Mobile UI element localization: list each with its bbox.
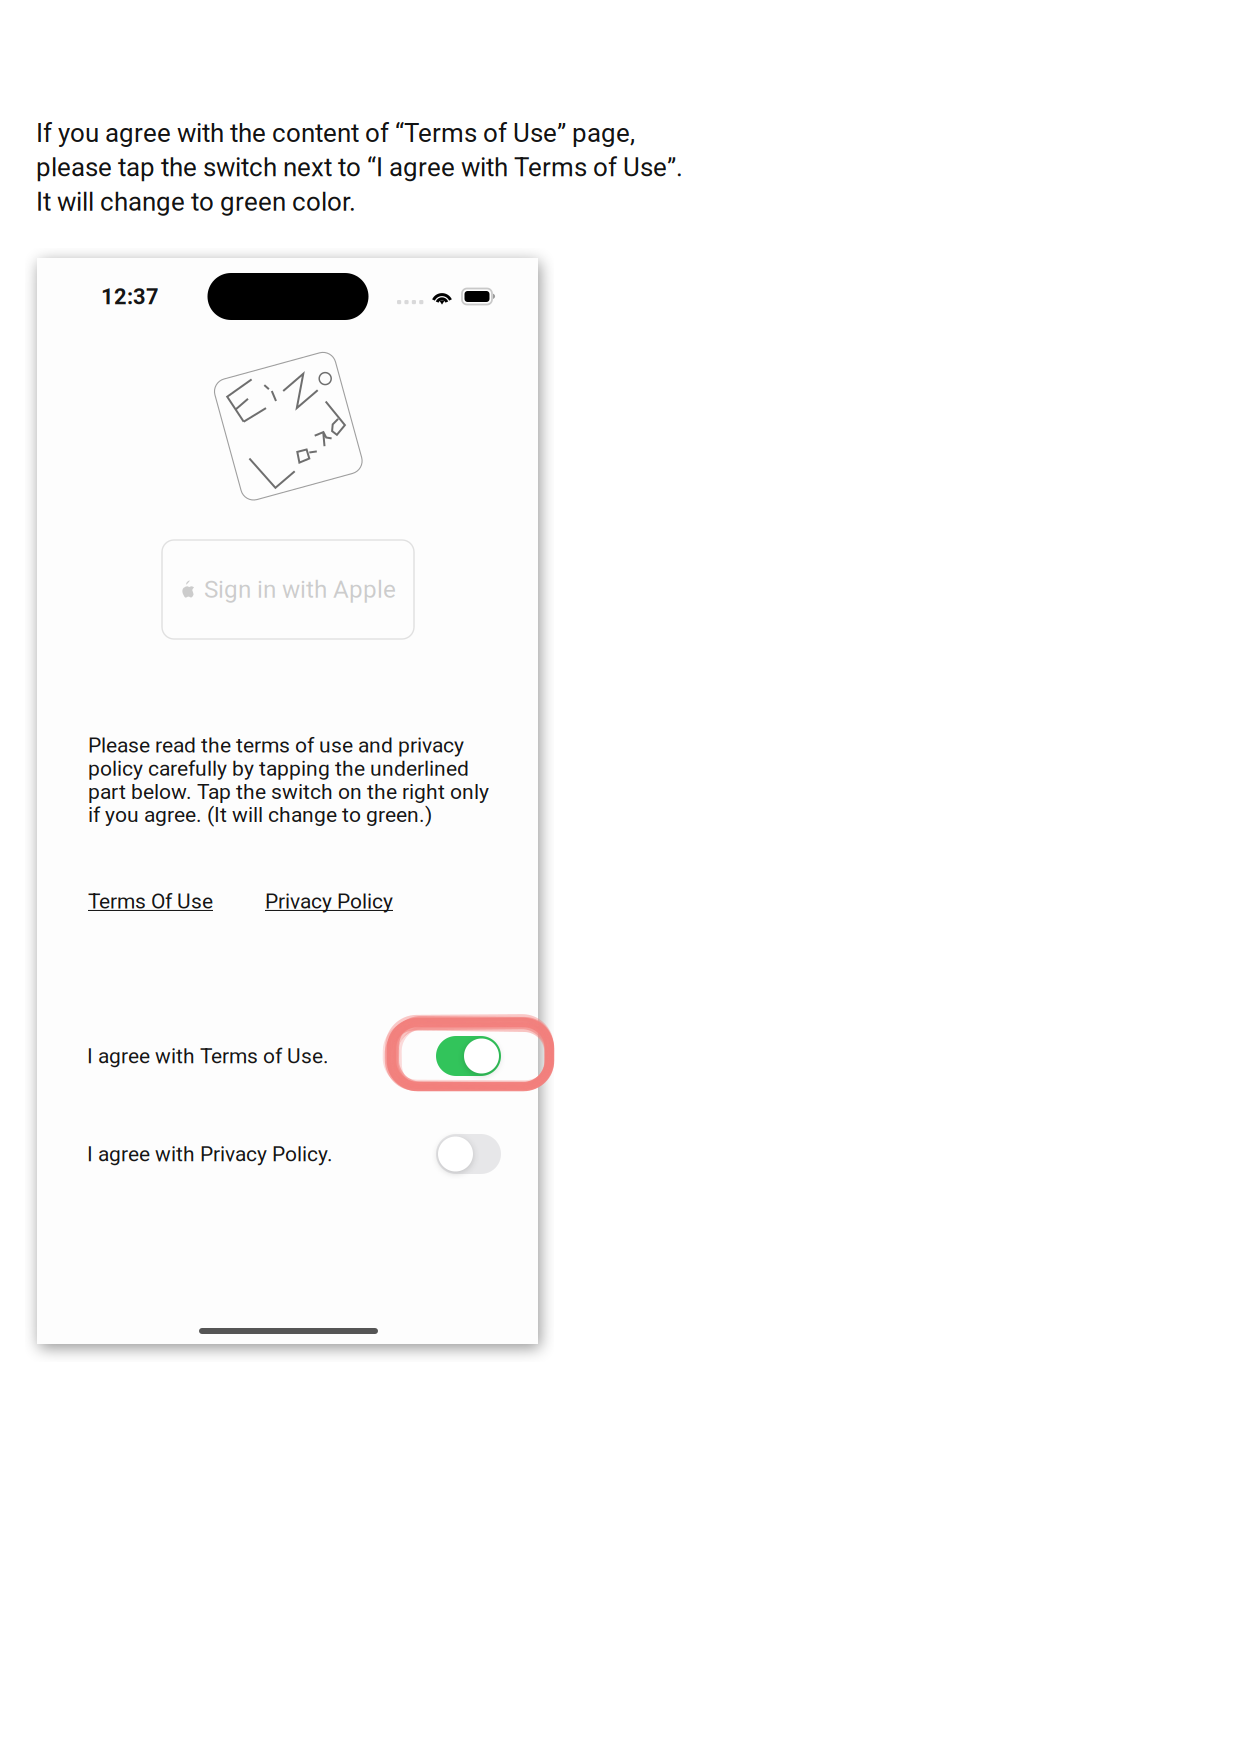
staticText: If you agree with the content of “Terms … (36, 118, 635, 148)
staticText: 12:37 (101, 284, 159, 310)
staticText: please tap the switch next to “I agree w… (36, 152, 683, 183)
staticText: part below. Tap the switch on the right … (88, 779, 489, 804)
button[interactable]: I agree with Privacy Policy. (87, 1132, 501, 1176)
button[interactable]: Terms Of Use (88, 889, 213, 913)
staticText: if you agree. (It will change to green.) (88, 803, 432, 827)
staticText: I agree with Privacy Policy. (87, 1142, 333, 1166)
button[interactable]: Sign in with Apple (162, 540, 414, 639)
staticText: It will change to green color. (36, 187, 356, 217)
staticText: Privacy Policy (265, 889, 393, 913)
button[interactable]: I agree with Terms of Use. (87, 1034, 501, 1078)
staticText: I agree with Terms of Use. (87, 1044, 329, 1068)
staticText: policy carefully by tapping the underlin… (88, 756, 469, 781)
staticText: Sign in with Apple (204, 575, 396, 604)
button[interactable]: Privacy Policy (265, 889, 393, 913)
staticText: Terms Of Use (88, 889, 213, 913)
staticText: Please read the terms of use and privacy (88, 733, 464, 758)
